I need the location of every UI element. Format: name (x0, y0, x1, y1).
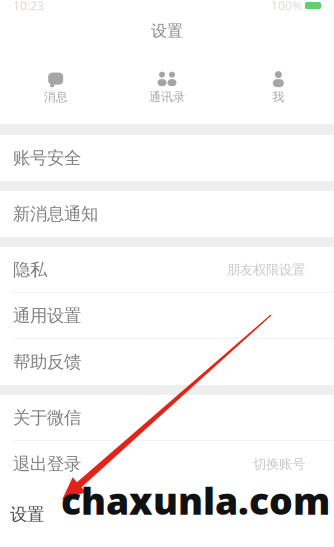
staticText: 我 (272, 90, 284, 104)
button[interactable]: 通用设置 (0, 293, 334, 339)
button[interactable]: 帮助反馈 (0, 339, 334, 385)
staticText: chaxunla.com (61, 475, 330, 525)
staticText: 10:23 (13, 0, 44, 13)
button[interactable]: 我 (223, 64, 334, 110)
staticText: 切换账号 (253, 456, 305, 472)
button[interactable]: 退出登录 (0, 441, 334, 487)
staticText: 退出登录 (13, 453, 81, 475)
staticText: 设置 (10, 504, 44, 525)
staticText: 隐私 (13, 259, 47, 280)
staticText: 关于微信 (13, 407, 81, 428)
staticText: 通讯录 (149, 90, 185, 104)
staticText: 100% (271, 0, 302, 13)
staticText: 设置 (151, 21, 183, 41)
staticText: 新消息通知 (13, 203, 98, 225)
staticText: 朋友权限设置 (227, 262, 305, 278)
button[interactable]: 通讯录 (111, 64, 223, 110)
staticText: 消息 (44, 90, 68, 104)
staticText: 账号安全 (13, 147, 81, 169)
button[interactable]: 消息 (0, 64, 111, 110)
button[interactable]: 新消息通知 (0, 191, 334, 237)
staticText: 帮助反馈 (13, 351, 81, 373)
staticText: 通用设置 (13, 305, 81, 326)
button[interactable]: 账号安全 (0, 135, 334, 181)
button[interactable]: 隐私 (0, 247, 334, 293)
button[interactable]: 关于微信 (0, 395, 334, 441)
